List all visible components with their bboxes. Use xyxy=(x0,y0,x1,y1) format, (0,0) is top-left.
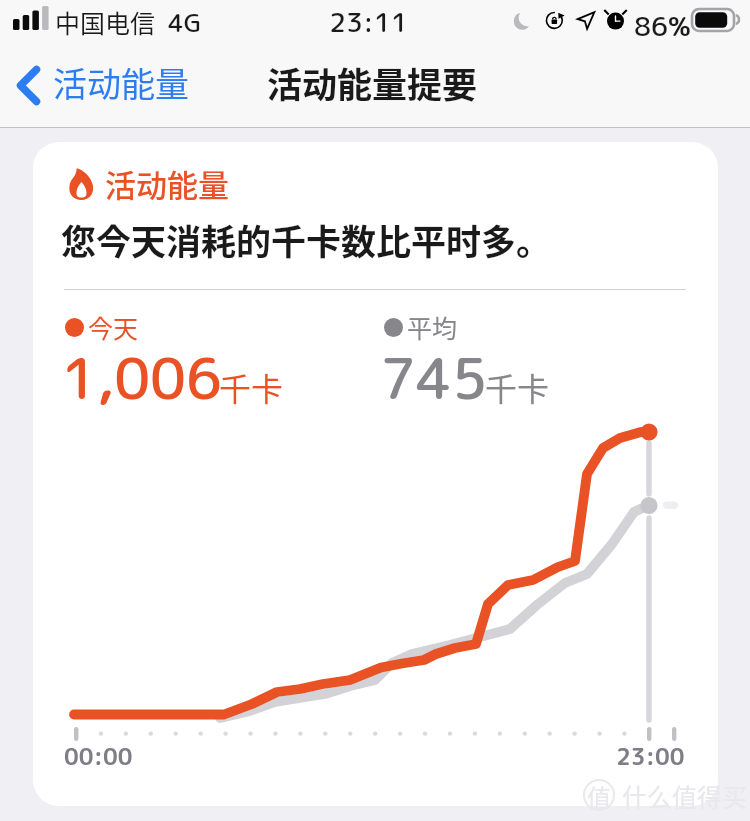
staticText: 23:11 xyxy=(329,3,408,41)
staticText: 千卡 xyxy=(219,364,284,410)
button[interactable]: Back to 活动能量 xyxy=(8,52,203,113)
staticText: 中国电信 xyxy=(55,4,156,40)
staticText: 千卡 xyxy=(485,364,550,410)
staticText: 今天 xyxy=(88,309,139,345)
staticText: 活动能量 xyxy=(105,161,229,206)
staticText: 745 xyxy=(380,338,488,418)
staticText: 什么值得买 xyxy=(622,778,748,814)
staticText: 活动能量提要 xyxy=(267,57,478,108)
staticText: 值 xyxy=(587,779,611,811)
staticText: 平均 xyxy=(407,309,458,345)
staticText: 86% xyxy=(634,7,691,45)
staticText: 1,006 xyxy=(61,338,222,418)
staticText: 4G xyxy=(168,5,202,40)
staticText: 活动能量 xyxy=(53,58,189,107)
staticText: 您今天消耗的千卡数比平时多。 xyxy=(61,214,552,265)
staticText: 23:00 xyxy=(616,740,685,772)
staticText: 00:00 xyxy=(64,740,133,772)
button[interactable]: 活动能量 xyxy=(33,142,718,806)
